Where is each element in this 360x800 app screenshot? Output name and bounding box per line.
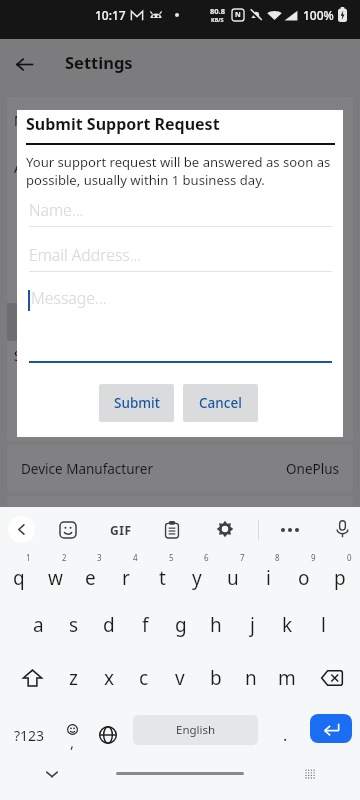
button[interactable]: Stickers [58,520,78,540]
staticText: q [13,565,25,591]
staticText: N [235,10,241,20]
staticText: 100% [303,7,334,23]
staticText: . [283,724,288,746]
staticText: Submit Support Request [26,113,220,135]
staticText: 4 [133,552,138,563]
staticText: u [227,565,239,591]
button[interactable]: q [1,551,37,597]
staticText: 8 [275,552,280,563]
staticText: e [85,565,96,591]
staticText: Cancel [199,394,242,412]
staticText: 80.8 [210,6,225,16]
button[interactable]: Voice input [332,519,352,539]
button[interactable]: More options [281,528,299,532]
staticText: KB/S [211,16,224,23]
button[interactable]: h [198,598,234,644]
staticText: x [104,665,115,691]
staticText: g [175,612,187,638]
button[interactable]: Shift [9,655,55,701]
button[interactable]: Back [1,41,47,87]
button[interactable]: l [305,598,341,644]
button[interactable]: Backspace [309,655,355,701]
staticText: z [69,665,78,691]
button[interactable]: t [144,551,180,597]
staticText: 10:17 [95,7,126,23]
staticText: m [278,665,296,691]
staticText: h [210,612,222,638]
staticText: Your support request will be answered as… [26,153,342,189]
button[interactable]: z [55,655,91,701]
button[interactable]: d [91,598,127,644]
staticText: Software Version [14,347,122,365]
staticText: Message... [31,287,107,309]
button[interactable]: y [179,551,215,597]
staticText: d [103,612,115,638]
staticText: v [175,665,185,691]
staticText: b [210,665,222,691]
button[interactable]: k [269,598,305,644]
button[interactable]: n [233,655,269,701]
button[interactable]: Change language [90,713,126,757]
staticText: Device Manufacturer [21,460,154,478]
button[interactable]: s [56,598,92,644]
staticText: k [282,612,293,638]
button[interactable]: ?123 [6,713,52,757]
staticText: Email Address... [29,244,142,266]
button[interactable]: v [162,655,198,701]
staticText: o [298,565,310,591]
staticText: Model [14,112,54,130]
staticText: 0 [347,552,352,563]
staticText: Android Version [14,159,116,177]
button[interactable]: p [322,551,358,597]
button[interactable]: Emoji [54,713,90,757]
button[interactable]: g [163,598,199,644]
button[interactable]: . [268,713,302,757]
staticText: , [70,732,75,752]
staticText: English [176,722,216,738]
staticText: OnePlus [286,460,339,478]
staticText: Submit [114,394,160,412]
button[interactable]: m [269,655,305,701]
staticText: 6 [204,552,209,563]
staticText: w [48,565,63,591]
staticText: n [245,665,257,691]
button[interactable]: English [133,715,258,745]
button[interactable]: b [198,655,234,701]
button[interactable]: a [20,598,56,644]
staticText: t [159,565,166,591]
staticText: ?123 [14,726,45,745]
button[interactable]: x [91,655,127,701]
button[interactable]: GIF [104,520,138,540]
button[interactable]: Submit [99,384,174,422]
button[interactable]: Hide keyboard [38,760,66,788]
staticText: j [250,612,255,638]
button[interactable]: j [234,598,270,644]
staticText: GIF [110,522,132,538]
button[interactable]: Enter [310,714,352,743]
staticText: 1 [26,552,31,563]
staticText: p [334,565,346,591]
button[interactable]: Switch keyboard [298,762,322,786]
staticText: c [139,665,149,691]
button[interactable]: Clipboard [162,519,182,539]
button[interactable]: w [37,551,73,597]
staticText: a [33,612,44,638]
staticText: Name... [29,199,84,221]
button[interactable]: o [286,551,322,597]
staticText: 9 [311,552,316,563]
button[interactable]: u [215,551,251,597]
button[interactable]: Cancel [183,384,258,422]
staticText: y [192,565,202,591]
staticText: r [122,565,130,591]
button[interactable]: Settings [215,519,235,539]
button[interactable]: r [108,551,144,597]
button[interactable]: Previous [8,516,35,543]
staticText: s [69,612,79,638]
staticText: i [266,565,271,591]
staticText: 2 [62,552,67,563]
button[interactable]: c [126,655,162,701]
button[interactable]: i [250,551,286,597]
button[interactable]: f [127,598,163,644]
button[interactable]: e [72,551,108,597]
